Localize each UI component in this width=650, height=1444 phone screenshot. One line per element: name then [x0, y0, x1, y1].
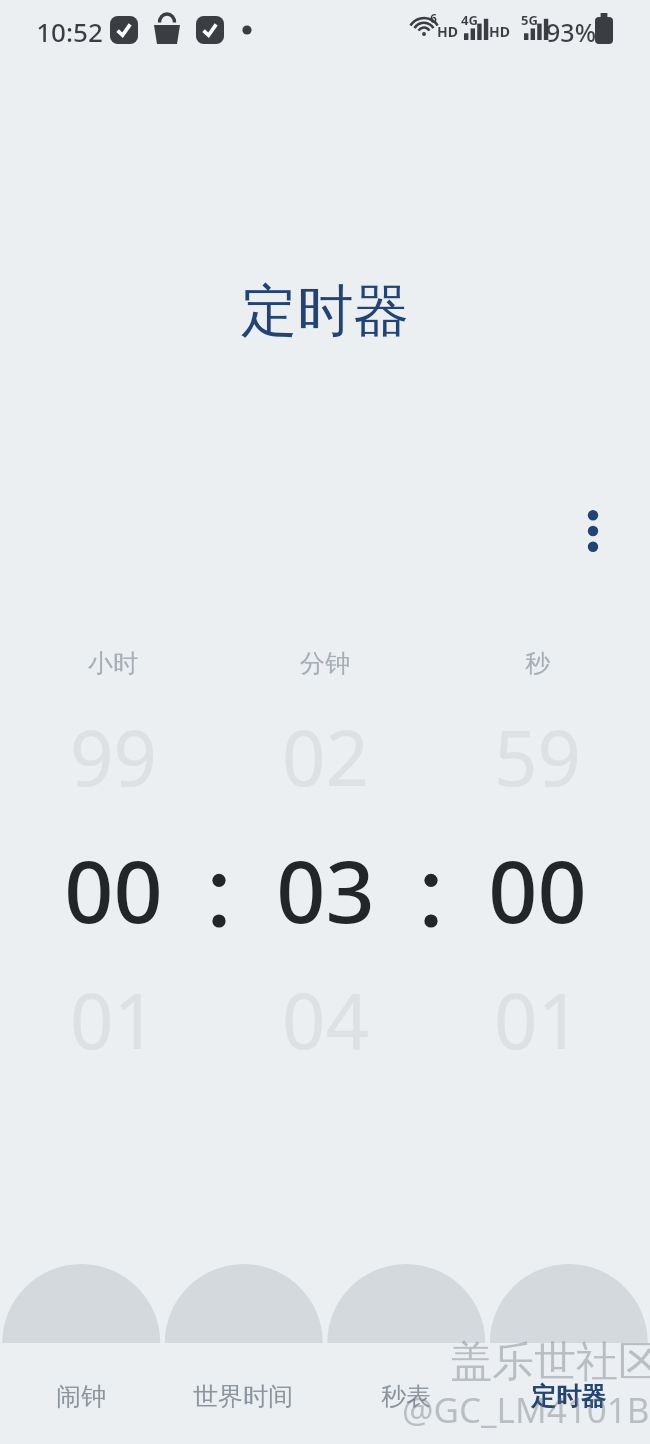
button[interactable]: 分钟 — [244, 648, 406, 1072]
staticText: 定时器 — [241, 276, 409, 347]
staticText: 00 — [488, 831, 587, 948]
staticText: 分钟 — [300, 648, 350, 679]
button[interactable]: More options — [562, 500, 624, 562]
staticText: 5G — [521, 11, 538, 29]
staticText: 盖乐世社区 — [450, 1336, 650, 1389]
staticText: @GC_LM4101BE — [402, 1386, 650, 1434]
staticText: HD — [437, 22, 458, 41]
staticText: 秒 — [525, 648, 550, 679]
button[interactable]: 秒表 — [324, 1381, 487, 1439]
staticText: 04 — [282, 968, 369, 1072]
staticText: 4G — [461, 11, 478, 29]
staticText: 01 — [70, 968, 157, 1072]
staticText: 6 — [430, 10, 437, 26]
staticText: 小时 — [88, 648, 138, 679]
staticText: 01 — [494, 968, 581, 1072]
button[interactable]: 世界时间 — [162, 1381, 324, 1439]
staticText: 02 — [282, 705, 369, 809]
staticText: 秒表 — [381, 1381, 431, 1412]
staticText: 世界时间 — [193, 1381, 293, 1412]
button[interactable]: 秒 — [456, 648, 618, 1072]
button[interactable]: 定时器 — [487, 1381, 650, 1439]
staticText: 99 — [70, 705, 157, 809]
staticText: 10:52 — [36, 14, 103, 49]
staticText: 93% — [546, 15, 596, 49]
button[interactable]: 小时 — [32, 648, 194, 1072]
staticText: 定时器 — [531, 1381, 606, 1412]
staticText: 00 — [64, 831, 163, 948]
staticText: 59 — [494, 705, 581, 809]
staticText: 闹钟 — [56, 1381, 106, 1412]
button[interactable]: 闹钟 — [0, 1381, 162, 1439]
staticText: 03 — [276, 831, 375, 948]
staticText: HD — [489, 22, 510, 41]
